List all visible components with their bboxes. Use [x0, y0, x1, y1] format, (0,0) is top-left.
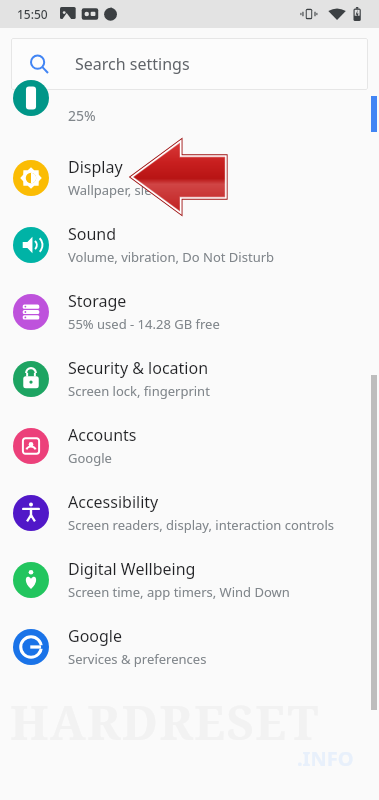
staticText: Volume, vibration, Do Not Disturb — [68, 248, 275, 266]
staticText: Google — [68, 625, 123, 647]
staticText: Screen time, app timers, Wind Down — [68, 583, 290, 601]
button[interactable]: Security & location — [0, 345, 379, 412]
button[interactable]: Storage — [0, 278, 379, 345]
button[interactable]: Google — [0, 613, 379, 680]
staticText: Screen lock, fingerprint — [68, 382, 210, 400]
staticText: Accounts — [68, 424, 137, 446]
staticText: Security & location — [68, 357, 209, 379]
staticText: Sound — [68, 223, 117, 245]
staticText: 25% — [68, 106, 96, 125]
staticText: Display — [68, 156, 123, 178]
staticText: Accessibility — [68, 491, 159, 513]
staticText: 55% used - 14.28 GB free — [68, 315, 220, 333]
staticText: Screen readers, display, interaction con… — [68, 516, 335, 534]
staticText: 15:50 — [17, 6, 48, 22]
button[interactable]: Digital Wellbeing — [0, 546, 379, 613]
staticText: Services & preferences — [68, 650, 207, 668]
staticText: Wallpaper, sleep, font size — [68, 181, 226, 199]
staticText: HARDRESET — [10, 690, 320, 754]
staticText: Google — [68, 449, 112, 467]
staticText: .INFO — [297, 745, 354, 772]
button[interactable]: Accessibility — [0, 479, 379, 546]
staticText: Search settings — [75, 53, 190, 75]
staticText: Digital Wellbeing — [68, 558, 196, 580]
button[interactable]: Display — [0, 144, 379, 211]
button[interactable]: Accounts — [0, 412, 379, 479]
button[interactable]: Search settings — [11, 38, 368, 90]
staticText: Storage — [68, 290, 127, 312]
button[interactable]: Sound — [0, 211, 379, 278]
